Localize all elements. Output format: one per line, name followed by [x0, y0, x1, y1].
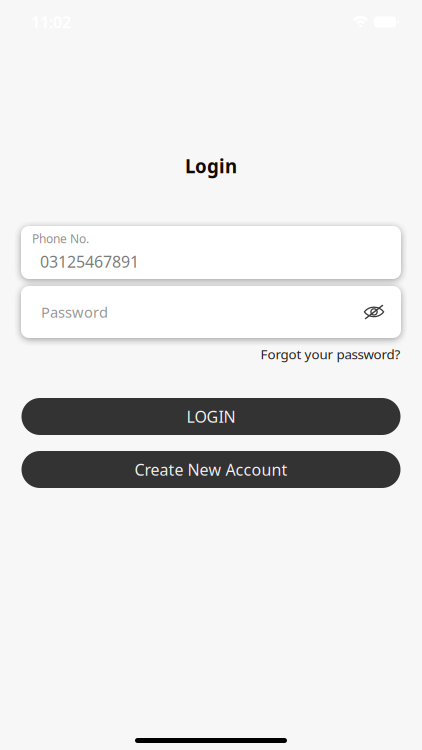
staticText: Forgot your password? — [260, 345, 400, 363]
button[interactable]: LOGIN — [21, 398, 400, 435]
staticText: Password — [41, 302, 108, 322]
staticText: 03125467891 — [40, 251, 139, 272]
button[interactable]: Show password — [357, 295, 391, 329]
button[interactable]: Create New Account — [21, 451, 400, 488]
button[interactable]: Forgot your password? — [260, 346, 400, 362]
staticText: Phone No. — [32, 230, 89, 246]
staticText: Login — [185, 154, 237, 178]
staticText: Create New Account — [134, 459, 287, 480]
staticText: LOGIN — [186, 406, 235, 427]
